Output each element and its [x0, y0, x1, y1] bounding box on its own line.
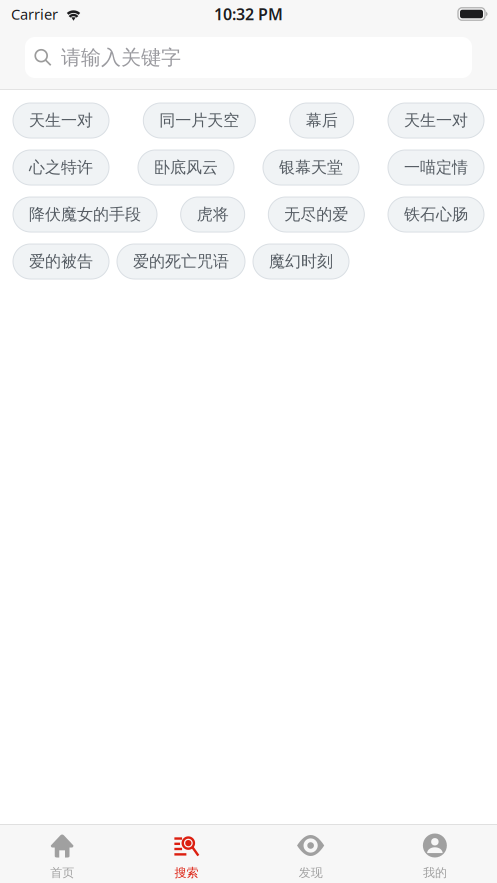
button[interactable]: 搜索	[124, 824, 248, 883]
staticText: 心之特许	[29, 158, 93, 177]
staticText: 铁石心肠	[404, 205, 468, 224]
button[interactable]: 一喵定情	[388, 150, 484, 185]
staticText: 10:32 PM	[214, 3, 283, 25]
button[interactable]: 虎将	[181, 197, 245, 232]
button[interactable]: 降伏魔女的手段	[13, 197, 157, 232]
staticText: 天生一对	[404, 111, 468, 130]
button[interactable]: 心之特许	[13, 150, 109, 185]
button[interactable]: 同一片天空	[143, 103, 255, 138]
staticText: 发现	[299, 865, 323, 880]
staticText: 幕后	[306, 111, 338, 130]
button[interactable]: 首页	[0, 824, 124, 883]
button[interactable]: 爱的被告	[13, 244, 109, 279]
staticText: 首页	[50, 865, 74, 880]
staticText: 爱的被告	[29, 252, 93, 271]
staticText: 天生一对	[29, 111, 93, 130]
staticText: 魔幻时刻	[269, 252, 333, 271]
staticText: 爱的死亡咒语	[133, 252, 229, 271]
button[interactable]: 我的	[373, 824, 497, 883]
staticText: 银幕天堂	[279, 158, 343, 177]
staticText: Carrier	[11, 4, 58, 24]
staticText: 虎将	[197, 205, 229, 224]
button[interactable]: 天生一对	[388, 103, 484, 138]
button[interactable]: 无尽的爱	[268, 197, 364, 232]
staticText: 无尽的爱	[284, 205, 348, 224]
staticText: 同一片天空	[159, 111, 239, 130]
staticText: 我的	[423, 865, 447, 880]
button[interactable]: 魔幻时刻	[253, 244, 349, 279]
staticText: 卧底风云	[154, 158, 218, 177]
staticText: 一喵定情	[404, 158, 468, 177]
staticText: 搜索	[174, 865, 198, 880]
button[interactable]: 幕后	[290, 103, 354, 138]
staticText: 降伏魔女的手段	[29, 205, 141, 224]
button[interactable]: 请输入关键字	[25, 37, 472, 78]
staticText: 请输入关键字	[61, 45, 181, 70]
button[interactable]: 发现	[248, 824, 373, 883]
button[interactable]: 天生一对	[13, 103, 109, 138]
button[interactable]: 卧底风云	[138, 150, 234, 185]
button[interactable]: 爱的死亡咒语	[117, 244, 245, 279]
button[interactable]: 银幕天堂	[263, 150, 359, 185]
button[interactable]: 铁石心肠	[388, 197, 484, 232]
